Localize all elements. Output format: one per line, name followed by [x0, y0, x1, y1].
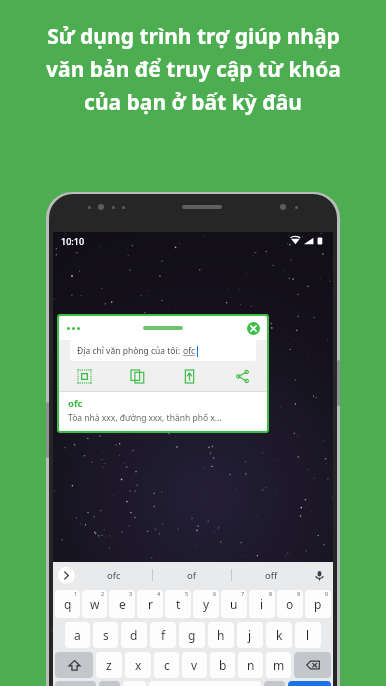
- button[interactable]: Close: [247, 322, 260, 335]
- button[interactable]: Close: [59, 316, 267, 340]
- staticText: x: [135, 657, 142, 673]
- button[interactable]: More: [58, 567, 75, 584]
- staticText: y: [203, 596, 210, 612]
- staticText: a: [74, 627, 81, 643]
- button[interactable]: Backspace: [294, 652, 331, 678]
- button[interactable]: Paste: [180, 367, 198, 385]
- staticText: Địa chỉ văn phòng của tôi:: [77, 345, 183, 357]
- button[interactable]: ofc: [75, 562, 152, 588]
- button[interactable]: e: [109, 590, 135, 618]
- staticText: k: [276, 627, 283, 643]
- button[interactable]: p: [305, 590, 331, 618]
- staticText: 10:10: [61, 235, 85, 247]
- button[interactable]: ,: [99, 681, 120, 686]
- button[interactable]: w: [82, 590, 107, 618]
- staticText: l: [306, 627, 310, 643]
- staticText: 1: [74, 590, 78, 597]
- button[interactable]: of: [153, 562, 231, 588]
- button[interactable]: i: [249, 590, 275, 618]
- button[interactable]: Emoji: [123, 681, 146, 686]
- staticText: Sử dụng trình trợ giúp nhập: [47, 22, 340, 51]
- staticText: ofc: [183, 345, 196, 357]
- button[interactable]: y: [193, 590, 219, 618]
- staticText: h: [217, 627, 225, 643]
- button[interactable]: q: [55, 590, 80, 618]
- button[interactable]: ofc: [59, 392, 267, 431]
- staticText: 6: [213, 590, 217, 597]
- staticText: q: [64, 596, 72, 612]
- button[interactable]: Địa chỉ văn phòng của tôi:: [77, 340, 249, 361]
- button[interactable]: b: [210, 652, 235, 678]
- button[interactable]: t: [165, 590, 191, 618]
- button[interactable]: k: [266, 622, 292, 648]
- staticText: 9: [297, 590, 301, 597]
- staticText: ofc: [68, 397, 83, 410]
- button[interactable]: o: [277, 590, 303, 618]
- staticText: u: [230, 596, 238, 612]
- staticText: s: [103, 627, 109, 643]
- button[interactable]: Shift: [55, 652, 93, 678]
- staticText: f: [161, 627, 166, 643]
- button[interactable]: r: [137, 590, 163, 618]
- staticText: văn bản để truy cập từ khóa: [46, 55, 341, 84]
- button[interactable]: m: [266, 652, 291, 678]
- button[interactable]: d: [121, 622, 147, 648]
- staticText: m: [273, 657, 285, 673]
- button[interactable]: Share: [233, 367, 251, 385]
- button[interactable]: j: [237, 622, 263, 648]
- button[interactable]: l: [295, 622, 321, 648]
- staticText: off: [265, 569, 278, 582]
- staticText: 0: [325, 590, 329, 597]
- button[interactable]: Copy: [128, 367, 146, 385]
- staticText: z: [106, 657, 112, 673]
- button[interactable]: n: [238, 652, 263, 678]
- staticText: 4: [157, 590, 161, 597]
- button[interactable]: x: [125, 652, 151, 678]
- staticText: of: [187, 569, 197, 582]
- button[interactable]: v: [182, 652, 207, 678]
- staticText: 7: [241, 590, 245, 597]
- staticText: ofc: [107, 569, 121, 582]
- staticText: Tòa nhà xxx, đường xxx, thành phố x...: [68, 412, 222, 424]
- staticText: j: [248, 627, 252, 643]
- staticText: r: [148, 596, 153, 612]
- button[interactable]: s: [93, 622, 118, 648]
- button[interactable]: Select: [75, 367, 93, 385]
- staticText: p: [314, 596, 322, 612]
- button[interactable]: h: [208, 622, 234, 648]
- staticText: 5: [185, 590, 189, 597]
- staticText: 3: [129, 590, 133, 597]
- staticText: 2: [101, 590, 105, 597]
- staticText: i: [260, 596, 264, 612]
- button[interactable]: .: [264, 681, 285, 686]
- button[interactable]: off: [232, 562, 310, 588]
- button[interactable]: Voice input: [310, 562, 328, 588]
- staticText: v: [191, 657, 198, 673]
- staticText: t: [176, 596, 181, 612]
- staticText: e: [119, 596, 126, 612]
- button[interactable]: z: [96, 652, 122, 678]
- button[interactable]: ?123: [55, 681, 96, 686]
- staticText: n: [247, 657, 255, 673]
- staticText: o: [286, 596, 294, 612]
- staticText: w: [90, 596, 100, 612]
- staticText: 8: [269, 590, 273, 597]
- button[interactable]: Enter: [288, 681, 331, 686]
- button[interactable]: a: [65, 622, 90, 648]
- staticText: b: [219, 657, 227, 673]
- button[interactable]: f: [150, 622, 176, 648]
- staticText: g: [188, 627, 196, 643]
- staticText: d: [130, 627, 138, 643]
- button[interactable]: g: [179, 622, 205, 648]
- staticText: của bạn ở bất kỳ đâu: [84, 88, 302, 117]
- button[interactable]: u: [221, 590, 247, 618]
- button[interactable]: c: [154, 652, 179, 678]
- staticText: c: [164, 657, 170, 673]
